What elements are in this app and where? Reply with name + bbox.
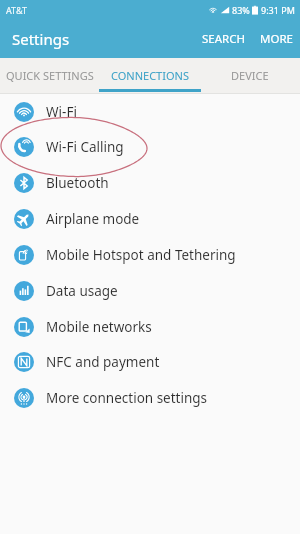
staticText: Wi-Fi [46,103,77,121]
staticText: Airplane mode [46,210,140,228]
button[interactable]: Data usage [0,273,300,309]
staticText: Wi-Fi Calling [46,138,124,156]
button[interactable]: More connection settings [0,380,300,416]
staticText: NFC and payment [46,353,160,371]
button[interactable]: Mobile Hotspot and Tethering [0,237,300,273]
staticText: Mobile Hotspot and Tethering [46,246,236,264]
button[interactable]: QUICK SETTINGS [0,58,100,92]
staticText: 9:31 PM [261,4,295,16]
staticText: AT&T [6,4,27,16]
button[interactable]: NFC and payment [0,344,300,380]
staticText: Bluetooth [46,174,109,192]
button[interactable]: Mobile networks [0,309,300,345]
staticText: Mobile networks [46,318,152,336]
staticText: More connection settings [46,389,208,407]
staticText: SEARCH [202,31,245,47]
button[interactable]: SEARCH [194,23,253,55]
button[interactable]: Wi-Fi Calling [0,129,300,165]
staticText: QUICK SETTINGS [6,68,94,83]
staticText: CONNECTIONS [111,68,189,83]
button[interactable]: Bluetooth [0,165,300,201]
staticText: Data usage [46,282,118,300]
staticText: MORE [260,31,293,47]
staticText: Settings [12,29,70,49]
button[interactable]: Airplane mode [0,201,300,237]
button[interactable]: DEVICE [200,58,300,92]
staticText: 83% [232,4,250,16]
button[interactable]: CONNECTIONS [100,58,200,92]
button[interactable]: MORE [253,23,300,55]
button[interactable]: Wi-Fi [0,94,300,130]
staticText: DEVICE [231,68,269,83]
